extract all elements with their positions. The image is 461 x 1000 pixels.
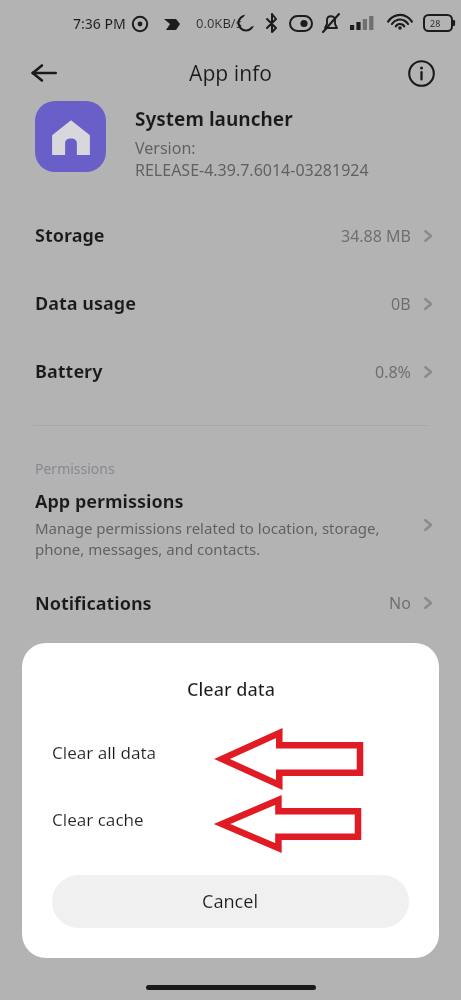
button[interactable]: App permissions: [0, 485, 461, 566]
button[interactable]: Storage: [0, 212, 461, 259]
staticText: Clear all data: [52, 741, 157, 764]
button[interactable]: Back: [20, 49, 68, 97]
staticText: 0.0KB/s: [196, 14, 242, 32]
staticText: Storage: [35, 223, 105, 248]
staticText: Cancel: [202, 889, 259, 914]
staticText: Permissions: [35, 459, 115, 478]
staticText: App permissions: [35, 489, 184, 514]
button[interactable]: Clear all data: [22, 731, 439, 773]
staticText: 7:36 PM: [73, 14, 126, 33]
staticText: Clear data: [187, 677, 275, 702]
staticText: Battery: [35, 359, 103, 384]
staticText: Notifications: [35, 591, 152, 616]
button[interactable]: Cancel: [52, 875, 409, 928]
staticText: 28: [430, 17, 441, 29]
button[interactable]: Clear cache: [22, 798, 439, 840]
staticText: No: [389, 592, 411, 614]
button[interactable]: App info details: [400, 52, 442, 94]
button[interactable]: Battery: [0, 348, 461, 395]
staticText: Clear cache: [52, 808, 144, 831]
staticText: Manage permissions related to location, …: [35, 518, 380, 560]
staticText: System launcher: [135, 106, 293, 132]
staticText: Data usage: [35, 291, 136, 316]
staticText: Version: RELEASE-4.39.7.6014-03281924: [135, 137, 369, 181]
staticText: 34.88 MB: [341, 225, 411, 247]
staticText: 0B: [391, 293, 411, 315]
staticText: App info: [189, 59, 273, 88]
staticText: 0.8%: [375, 361, 411, 383]
button[interactable]: Notifications: [0, 580, 461, 626]
button[interactable]: Data usage: [0, 280, 461, 327]
